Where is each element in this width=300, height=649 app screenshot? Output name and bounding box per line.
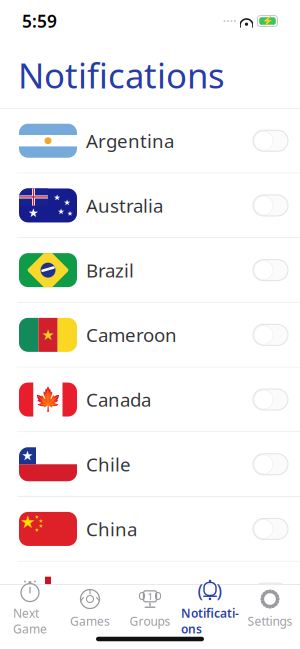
staticText: ( — [197, 578, 203, 602]
button[interactable]: Brazil — [0, 238, 300, 303]
button[interactable]: Games — [60, 583, 120, 631]
button[interactable]: Argentina — [0, 109, 300, 173]
button[interactable]: England — [0, 562, 300, 626]
staticText: Chile — [86, 452, 131, 477]
button[interactable]: ★ — [0, 303, 300, 367]
staticText: Games — [70, 613, 110, 629]
staticText: ★ — [53, 193, 60, 202]
staticText: Cameroon — [86, 322, 177, 347]
button[interactable]: 1 — [120, 583, 180, 631]
staticText: China — [86, 516, 137, 541]
staticText: Next Game — [13, 605, 47, 637]
staticText: ⚡ — [261, 16, 273, 26]
button[interactable]: ★ — [0, 173, 300, 238]
staticText: 5:59 — [22, 9, 57, 32]
staticText: ★ — [57, 207, 64, 216]
staticText: Brazil — [86, 258, 134, 282]
staticText: ★ — [20, 512, 36, 532]
staticText: Argentina — [86, 128, 174, 153]
staticText: ) — [216, 578, 222, 602]
staticText: ★ — [38, 518, 43, 524]
button[interactable]: ★ — [0, 432, 300, 497]
staticText: ★ — [34, 527, 39, 533]
staticText: England — [86, 581, 157, 606]
staticText: ★ — [41, 326, 54, 343]
staticText: Notifications — [18, 52, 225, 98]
button[interactable]: ( — [180, 575, 240, 639]
staticText: Groups — [129, 613, 170, 629]
staticText: ★ — [38, 523, 43, 529]
button[interactable]: ★ — [0, 497, 300, 562]
staticText: Notifications — [181, 605, 239, 637]
staticText: ★ — [63, 198, 70, 207]
staticText: Canada — [86, 387, 151, 412]
button[interactable]: 🍁 — [0, 367, 300, 432]
staticText: 1 — [147, 590, 152, 602]
staticText: ★ — [34, 514, 39, 520]
staticText: Settings — [247, 613, 292, 629]
button[interactable]: Next Game — [0, 575, 60, 639]
staticText: Australia — [86, 193, 163, 218]
staticText: 🍁 — [34, 387, 62, 412]
staticText: ★ — [28, 206, 39, 220]
staticText: ★ — [67, 210, 73, 217]
staticText: ★ — [21, 448, 33, 463]
button[interactable]: Settings — [240, 583, 300, 631]
